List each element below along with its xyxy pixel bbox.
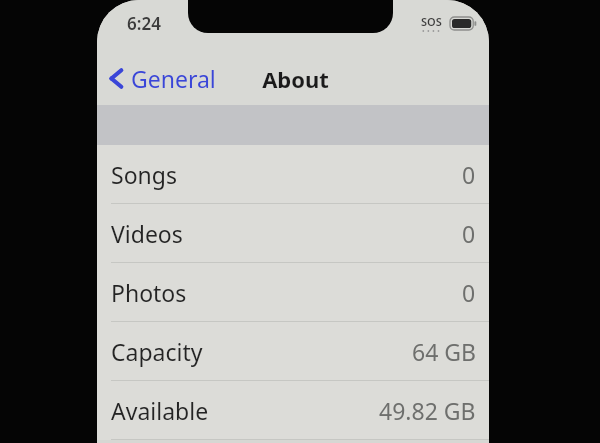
staticText: 0 [462, 277, 476, 308]
staticText: Capacity [111, 336, 203, 367]
staticText: Songs [111, 159, 177, 190]
button[interactable]: Capacity [97, 322, 489, 381]
button[interactable]: Videos [97, 204, 489, 263]
staticText: 0 [462, 159, 476, 190]
staticText: 0 [462, 218, 476, 249]
staticText: SOS [421, 14, 442, 29]
staticText: 49.82 GB [379, 395, 476, 426]
staticText: About [262, 64, 329, 94]
staticText: General [131, 63, 216, 94]
staticText: 64 GB [412, 336, 476, 367]
button[interactable]: General [103, 57, 222, 100]
button[interactable]: Available [97, 381, 489, 440]
staticText: 6:24 [127, 12, 161, 35]
staticText: Videos [111, 218, 183, 249]
button[interactable]: Songs [97, 145, 489, 204]
button[interactable]: Photos [97, 263, 489, 322]
staticText: Photos [111, 277, 187, 308]
staticText: Available [111, 395, 209, 426]
